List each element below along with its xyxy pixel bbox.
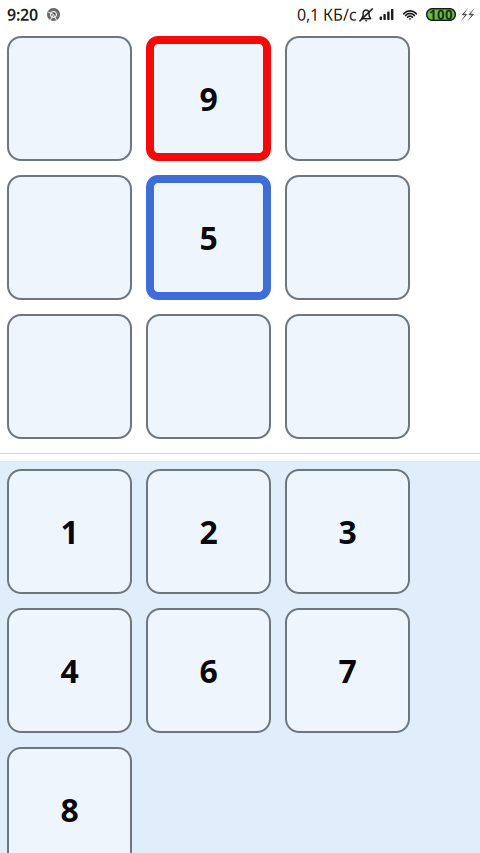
button[interactable]: 6 <box>146 608 271 733</box>
button[interactable]: Empty square <box>285 314 410 439</box>
staticText: 5 <box>199 216 217 259</box>
staticText: 9 <box>199 77 217 120</box>
button[interactable]: 1 <box>7 469 132 594</box>
staticText: 100 <box>429 6 453 23</box>
button[interactable]: Empty square <box>7 175 132 300</box>
button[interactable]: 8 <box>7 747 132 853</box>
button[interactable]: Empty square <box>7 36 132 161</box>
button[interactable]: Empty square <box>285 36 410 161</box>
staticText: 9:20 <box>7 4 38 25</box>
staticText: 1 <box>60 510 78 553</box>
button[interactable]: 7 <box>285 608 410 733</box>
button[interactable]: 4 <box>7 608 132 733</box>
button[interactable]: Empty square <box>146 314 271 439</box>
staticText: 3 <box>338 510 356 553</box>
button[interactable]: 9 <box>146 36 271 161</box>
staticText: 8 <box>60 788 78 831</box>
staticText: 0,1 КБ/с <box>297 4 357 25</box>
staticText: 7 <box>338 649 356 692</box>
button[interactable]: Empty square <box>285 175 410 300</box>
staticText: 4 <box>60 649 78 692</box>
button[interactable]: 5 <box>146 175 271 300</box>
staticText: 2 <box>199 510 217 553</box>
button[interactable]: 3 <box>285 469 410 594</box>
button[interactable]: Empty square <box>7 314 132 439</box>
staticText: 6 <box>199 649 217 692</box>
button[interactable]: 2 <box>146 469 271 594</box>
